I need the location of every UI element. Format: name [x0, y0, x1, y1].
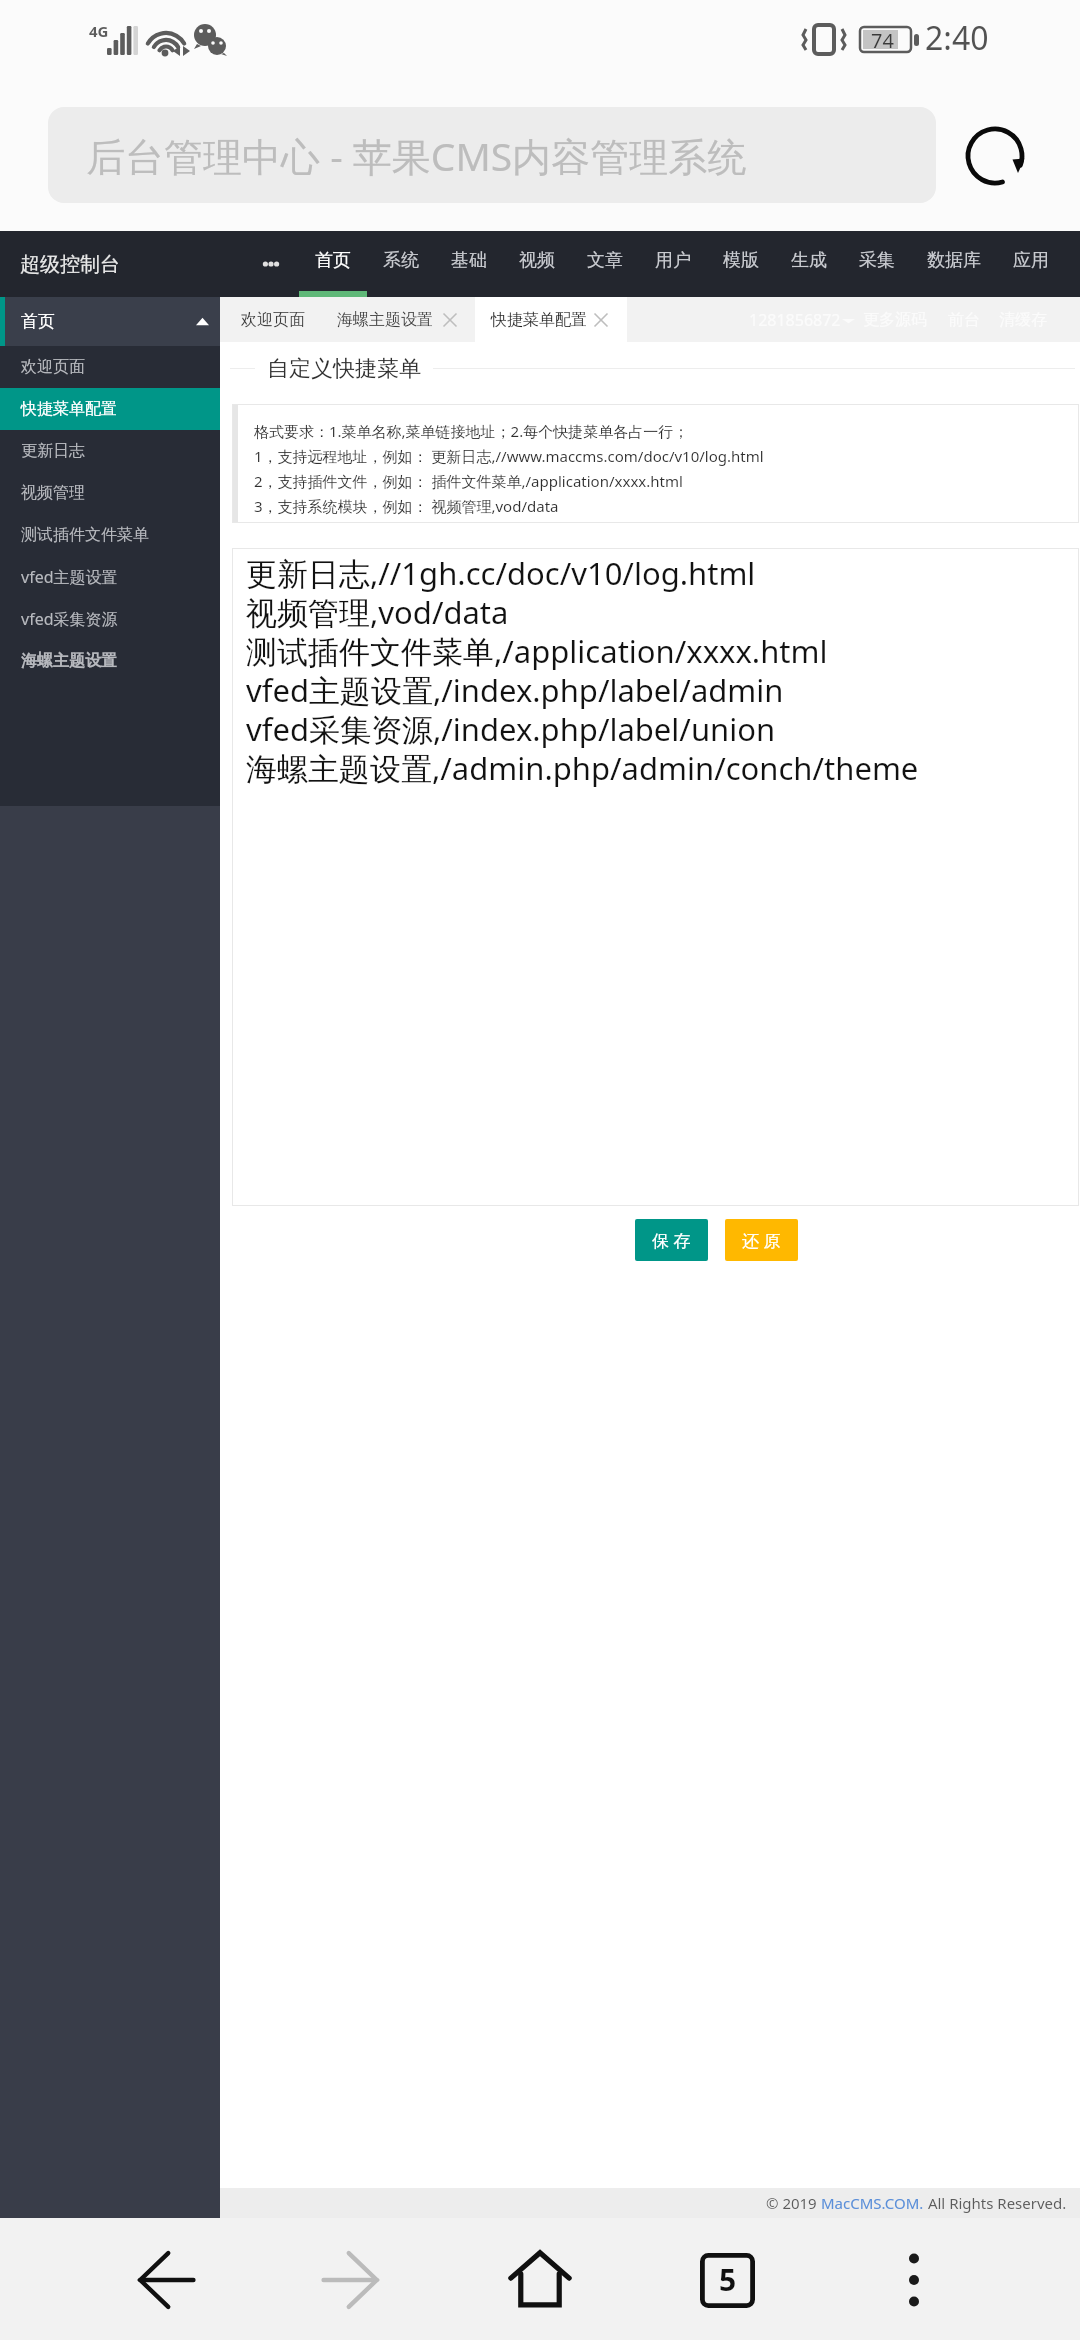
button[interactable]: 海螺主题设置	[325, 297, 475, 342]
staticText: 2:40	[925, 16, 989, 60]
staticText: 1281856872	[749, 309, 841, 331]
staticText: 5	[719, 2259, 737, 2300]
button[interactable]: 用户	[639, 231, 707, 297]
button[interactable]: 系统	[367, 231, 435, 297]
staticText: 保 存	[652, 1229, 691, 1252]
staticText: 欢迎页面	[241, 310, 305, 330]
staticText: 系统	[383, 249, 419, 272]
button[interactable]: Back	[110, 2224, 222, 2336]
button[interactable]: More	[255, 231, 299, 297]
staticText: vfed采集资源	[21, 608, 118, 630]
button[interactable]: 保 存	[635, 1219, 708, 1261]
button[interactable]: 应用	[997, 231, 1065, 297]
button[interactable]: vfed采集资源	[0, 598, 220, 640]
staticText: 基础	[451, 249, 487, 272]
button[interactable]: 更新日志	[0, 430, 220, 472]
staticText: 首页	[21, 311, 55, 332]
button[interactable]: 视频	[503, 231, 571, 297]
staticText: 模版	[723, 249, 759, 272]
staticText: 格式要求：1.菜单名称,菜单链接地址；2.每个快捷菜单各占一行； 1，支持远程地…	[254, 421, 764, 516]
staticText: 后台管理中心 - 苹果CMS内容管理系统	[86, 129, 747, 182]
button[interactable]: Forward	[295, 2224, 407, 2336]
staticText: 视频管理	[21, 483, 85, 503]
button[interactable]: 测试插件文件菜单	[0, 514, 220, 556]
staticText: 文章	[587, 249, 623, 272]
staticText: MacCMS.COM.	[821, 2193, 924, 2213]
staticText: 4G	[89, 21, 109, 41]
button[interactable]: 文章	[571, 231, 639, 297]
button[interactable]: 海螺主题设置	[0, 640, 220, 682]
button[interactable]: Tabs	[671, 2224, 783, 2336]
staticText: 生成	[791, 249, 827, 272]
button[interactable]: 首页	[299, 231, 367, 297]
button[interactable]: 欢迎页面	[0, 346, 220, 388]
button[interactable]: Home	[484, 2224, 596, 2336]
button[interactable]: 欢迎页面	[228, 297, 317, 342]
button[interactable]: Reload	[951, 112, 1039, 200]
button[interactable]: 首页	[0, 297, 220, 346]
staticText: 快捷菜单配置	[491, 310, 587, 330]
staticText: 测试插件文件菜单	[21, 525, 149, 545]
staticText: 清缓存	[999, 310, 1047, 330]
staticText: 更多源码	[863, 310, 927, 330]
staticText: 欢迎页面	[21, 357, 85, 377]
button[interactable]: 采集	[843, 231, 911, 297]
staticText: © 2019	[766, 2193, 821, 2213]
button[interactable]: 基础	[435, 231, 503, 297]
button[interactable]: 还 原	[725, 1219, 798, 1261]
staticText: 数据库	[927, 249, 981, 272]
button[interactable]: 后台管理中心 - 苹果CMS内容管理系统	[48, 107, 936, 203]
button[interactable]: 数据库	[911, 231, 997, 297]
staticText: 更新日志	[21, 441, 85, 461]
button[interactable]: Menu	[858, 2224, 970, 2336]
staticText: 首页	[315, 249, 351, 272]
staticText: All Rights Reserved.	[924, 2193, 1067, 2213]
staticText: 应用	[1013, 249, 1049, 272]
button[interactable]: 快捷菜单配置	[0, 388, 220, 430]
staticText: 海螺主题设置	[337, 310, 433, 330]
staticText: 视频	[519, 249, 555, 272]
staticText: vfed主题设置	[21, 566, 118, 588]
staticText: 用户	[655, 249, 691, 272]
button[interactable]: 快捷菜单配置	[475, 297, 627, 342]
button[interactable]: 视频管理	[0, 472, 220, 514]
staticText: 超级控制台	[20, 252, 120, 277]
button[interactable]: 模版	[707, 231, 775, 297]
button[interactable]: 生成	[775, 231, 843, 297]
button[interactable]: vfed主题设置	[0, 556, 220, 598]
staticText: 自定义快捷菜单	[267, 355, 421, 383]
staticText: 还 原	[742, 1229, 781, 1252]
staticText: 前台	[948, 310, 980, 330]
staticText: 74	[871, 27, 894, 54]
staticText: 更新日志,//1gh.cc/doc/v10/log.html 视频管理,vod/…	[246, 552, 919, 789]
staticText: 快捷菜单配置	[21, 399, 117, 419]
staticText: 采集	[859, 249, 895, 272]
staticText: 海螺主题设置	[21, 651, 117, 671]
